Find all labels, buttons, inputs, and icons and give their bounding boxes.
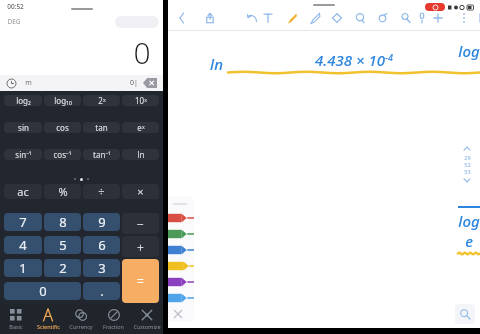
button[interactable]: Pen	[283, 10, 299, 26]
button[interactable]: Currency	[64, 304, 97, 334]
staticText: Basic	[9, 323, 23, 330]
button[interactable]: eˣ	[122, 122, 159, 133]
staticText: sin	[18, 122, 29, 133]
staticText: +	[137, 239, 144, 255]
button[interactable]: Back	[174, 10, 190, 26]
button[interactable]: sin	[4, 122, 42, 133]
button[interactable]: log₁₀	[44, 95, 81, 106]
button[interactable]: Voice	[414, 10, 430, 26]
staticText: −	[137, 216, 144, 232]
button[interactable]: Pen colour	[168, 226, 194, 242]
button[interactable]: Pen colour	[168, 274, 194, 290]
button[interactable]: Add	[430, 10, 446, 26]
button[interactable]: Share	[202, 10, 218, 26]
staticText: ln	[210, 54, 223, 74]
button[interactable]: Basic	[0, 304, 32, 334]
button[interactable]: 5	[44, 236, 81, 254]
button[interactable]: Pen colour	[168, 242, 194, 258]
button[interactable]: 8	[44, 213, 81, 231]
button[interactable]: ac	[4, 184, 42, 199]
button[interactable]: 9	[83, 213, 120, 231]
staticText: 6	[98, 236, 106, 254]
button[interactable]: log₂	[4, 95, 42, 106]
button[interactable]: ×	[122, 184, 159, 199]
staticText: ×	[137, 184, 144, 199]
button[interactable]: Pen colour	[168, 258, 194, 274]
button[interactable]: Undo	[244, 10, 260, 26]
button[interactable]: Scientific	[32, 304, 64, 334]
button[interactable]: Previous page	[462, 144, 472, 154]
button[interactable]: sin⁻¹	[4, 149, 42, 160]
button[interactable]: 2ˣ	[83, 95, 120, 106]
staticText: -4	[385, 51, 393, 63]
button[interactable]: cos⁻¹	[44, 149, 81, 160]
staticText: Scientific	[37, 323, 60, 330]
staticText: 2	[59, 259, 67, 277]
button[interactable]: 7	[4, 213, 42, 231]
button[interactable]: cos	[44, 122, 81, 133]
staticText: tan⁻¹	[93, 149, 111, 160]
button[interactable]: ln	[122, 149, 159, 160]
button[interactable]: Customize	[130, 304, 163, 334]
button[interactable]: Highlighter	[398, 10, 414, 26]
staticText: 2ˣ	[98, 95, 106, 106]
staticText: 3	[98, 259, 106, 277]
button[interactable]: Search	[455, 304, 475, 324]
staticText: 52	[464, 161, 471, 168]
staticText: 10ˣ	[135, 95, 147, 106]
button[interactable]: History	[6, 78, 17, 89]
button[interactable]: Backspace	[143, 78, 157, 88]
button[interactable]: %	[44, 184, 81, 199]
button[interactable]: 6	[83, 236, 120, 254]
staticText: 7	[19, 213, 27, 231]
staticText: cos⁻¹	[53, 149, 72, 160]
button[interactable]: Eraser	[329, 10, 345, 26]
staticText: 0	[133, 32, 151, 73]
button[interactable]: tan⁻¹	[83, 149, 120, 160]
button[interactable]: Lasso	[352, 10, 368, 26]
staticText: log₁₀	[54, 95, 72, 106]
button[interactable]: ÷	[83, 184, 120, 199]
button[interactable]: Next page	[462, 175, 472, 185]
button[interactable]: Shapes	[375, 10, 391, 26]
button[interactable]: =	[122, 259, 159, 303]
button[interactable]: Pencil	[306, 10, 322, 26]
staticText: 9	[98, 213, 106, 231]
button[interactable]: Fraction	[97, 304, 130, 334]
button[interactable]: −	[122, 213, 159, 234]
staticText: ln	[137, 149, 145, 160]
staticText: ac	[17, 184, 29, 199]
staticText: 0	[39, 282, 47, 300]
staticText: Customize	[133, 323, 161, 330]
staticText: cos	[56, 122, 69, 133]
button[interactable]: .	[83, 282, 120, 300]
staticText: 8	[59, 213, 67, 231]
staticText: 4.438 × 10	[315, 50, 385, 70]
button[interactable]: Pen colour	[168, 290, 194, 306]
button[interactable]: m	[25, 78, 32, 88]
button[interactable]: tan	[83, 122, 120, 133]
staticText: log₂	[16, 95, 31, 106]
staticText: eˣ	[137, 122, 145, 133]
button[interactable]: 2	[44, 259, 81, 277]
button[interactable]: +	[122, 236, 159, 257]
button[interactable]: Close palette	[174, 310, 182, 318]
button[interactable]: 4	[4, 236, 42, 254]
staticText: Currency	[69, 323, 93, 330]
staticText: sin⁻¹	[15, 149, 32, 160]
staticText: log	[458, 41, 480, 61]
staticText: ÷	[98, 184, 105, 199]
button[interactable]: 3	[83, 259, 120, 277]
button[interactable]: Pen colour	[168, 210, 194, 226]
staticText: =	[137, 273, 144, 289]
button[interactable]: 10ˣ	[122, 95, 159, 106]
button[interactable]: 0	[4, 282, 81, 300]
button[interactable]: More options	[456, 10, 472, 26]
staticText: DEG	[7, 17, 21, 26]
button[interactable]: 1	[4, 259, 42, 277]
staticText: 29	[464, 154, 471, 161]
staticText: log e	[458, 211, 480, 251]
staticText: 53	[464, 168, 471, 175]
button[interactable]: Text	[260, 10, 276, 26]
staticText: 1	[19, 259, 27, 277]
